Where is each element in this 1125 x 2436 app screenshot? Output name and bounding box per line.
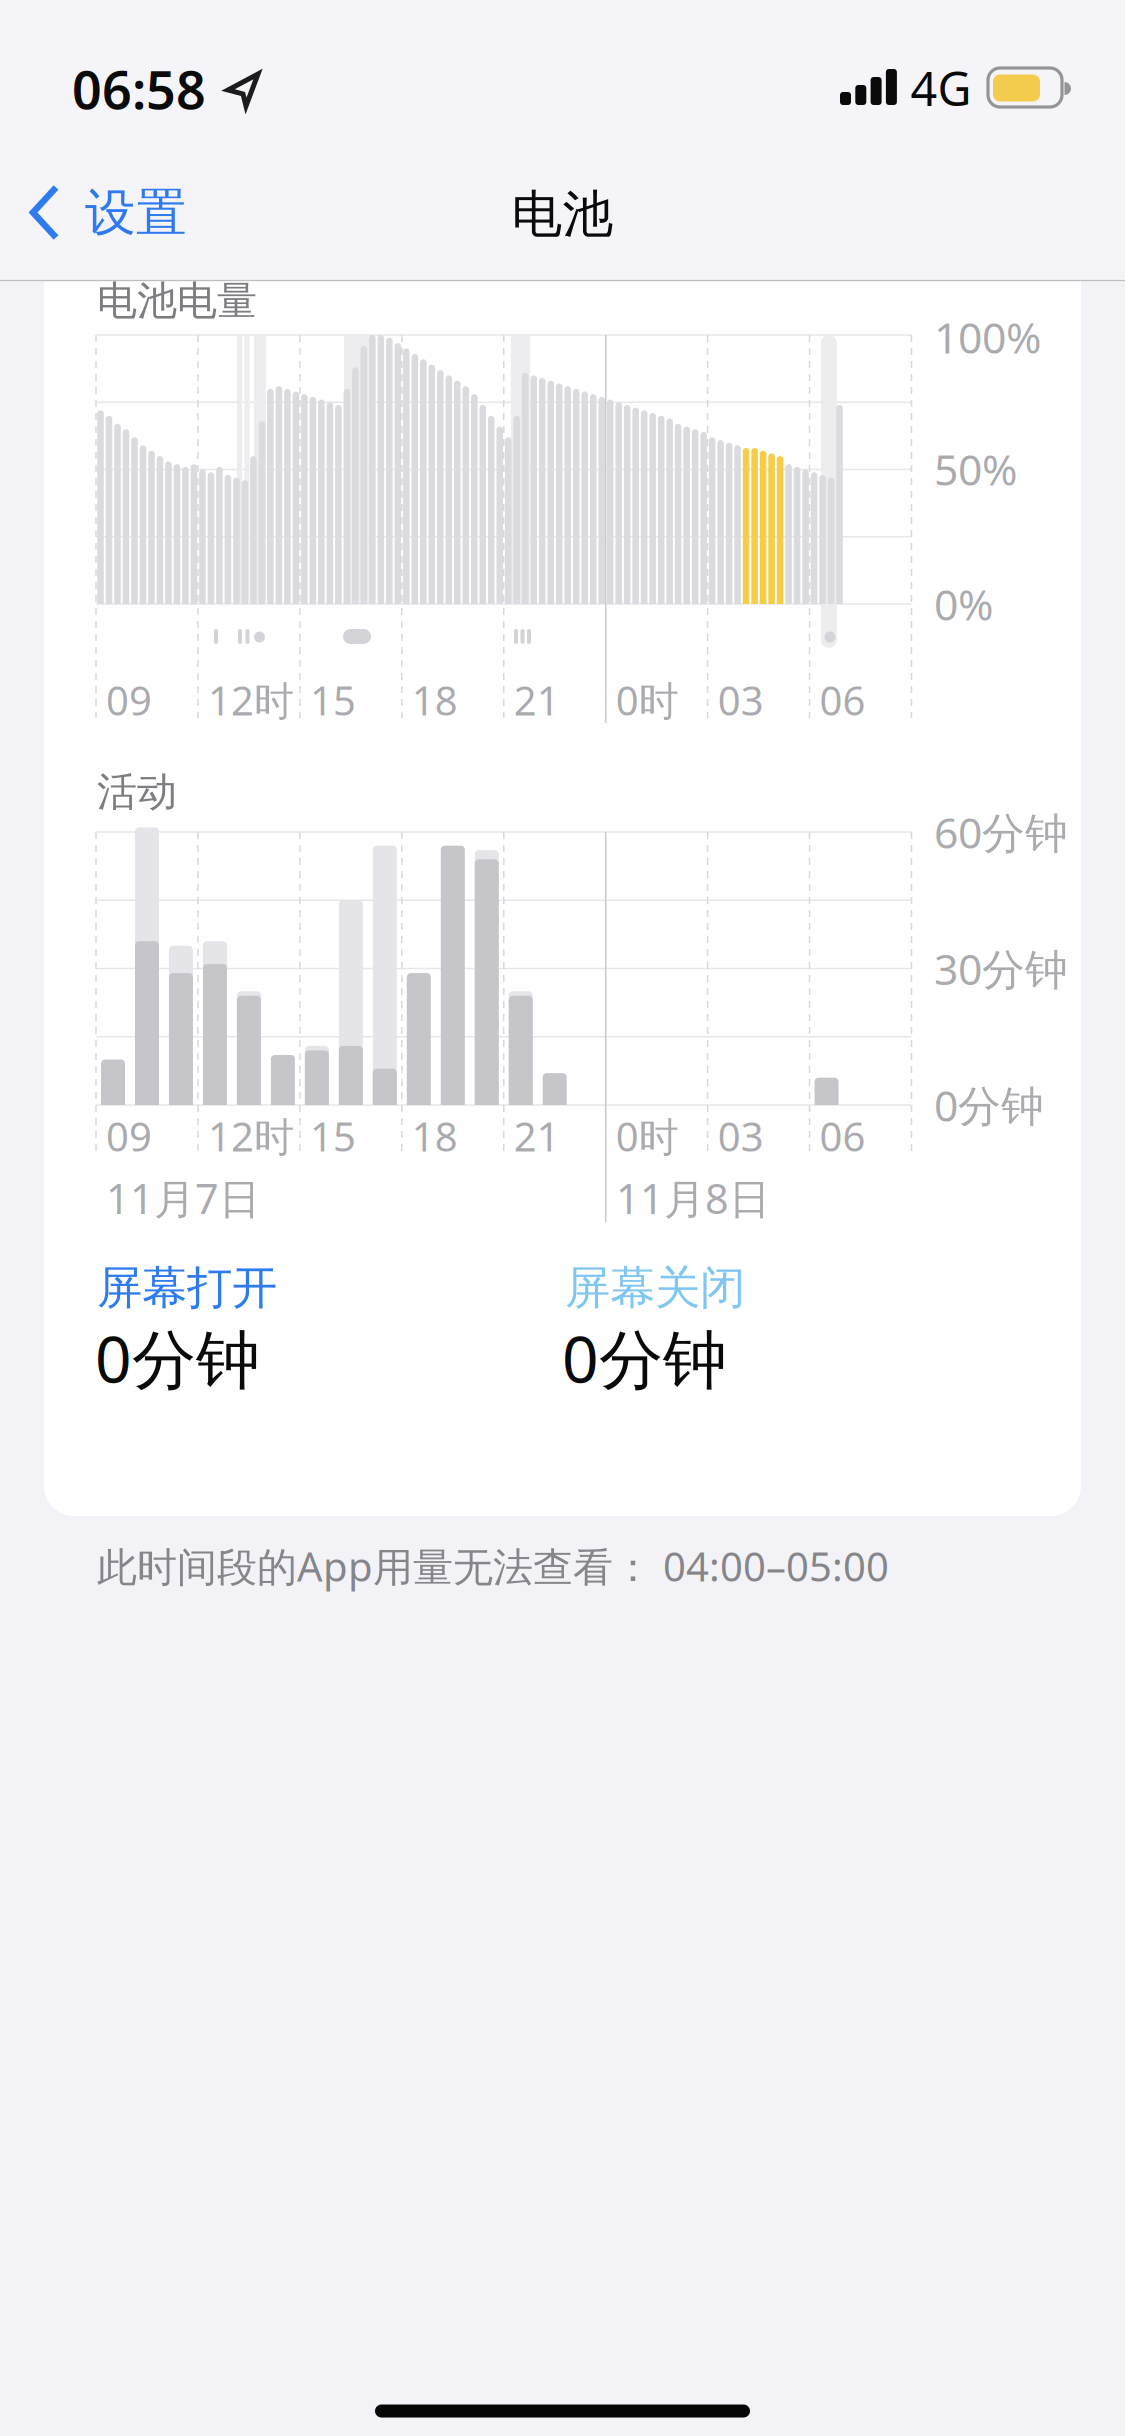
staticText: 03: [718, 1109, 764, 1162]
staticText: 30分钟: [934, 940, 1068, 997]
staticText: 活动: [97, 767, 177, 816]
staticText: 100%: [934, 309, 1041, 365]
staticText: 12时: [208, 1109, 294, 1162]
staticText: 06: [820, 1109, 866, 1162]
staticText: 4G: [910, 57, 971, 119]
staticText: 设置: [85, 182, 187, 244]
staticText: 03: [718, 673, 764, 726]
staticText: 屏幕关闭: [565, 1260, 745, 1316]
staticText: 60分钟: [934, 804, 1068, 860]
staticText: 0分钟: [934, 1077, 1044, 1133]
staticText: 09: [106, 1109, 152, 1162]
staticText: 0分钟: [562, 1315, 727, 1400]
staticText: 11月7日: [106, 1171, 260, 1225]
staticText: 21: [514, 1109, 560, 1162]
staticText: 06:58: [72, 54, 206, 124]
button[interactable]: 设置: [29, 182, 187, 244]
staticText: 电池: [511, 183, 613, 246]
staticText: 0%: [934, 576, 993, 632]
staticText: 15: [310, 1109, 356, 1162]
staticText: 屏幕打开: [97, 1260, 277, 1316]
staticText: 50%: [934, 441, 1017, 497]
staticText: 21: [514, 673, 560, 726]
staticText: 18: [412, 673, 458, 726]
staticText: 06: [820, 673, 866, 726]
staticText: 0时: [616, 673, 679, 726]
staticText: 12时: [208, 673, 294, 726]
staticText: 09: [106, 673, 152, 726]
staticText: 11月8日: [616, 1171, 770, 1225]
staticText: 此时间段的App用量无法查看： 04:00–05:00: [97, 1539, 889, 1592]
staticText: 电池电量: [97, 276, 257, 325]
staticText: 0分钟: [95, 1315, 260, 1400]
staticText: 18: [412, 1109, 458, 1162]
staticText: 15: [310, 673, 356, 726]
staticText: 0时: [616, 1109, 679, 1162]
